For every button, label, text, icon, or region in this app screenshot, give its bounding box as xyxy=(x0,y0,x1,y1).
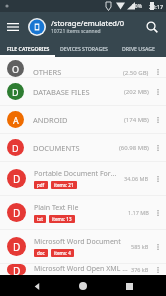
staticText: ANDROID xyxy=(33,115,124,125)
staticText: doc xyxy=(37,250,45,256)
staticText: D xyxy=(13,172,21,186)
staticText: 585 kB xyxy=(131,243,149,250)
button[interactable]: D xyxy=(0,78,166,105)
button[interactable]: D xyxy=(0,196,166,229)
staticText: pdf xyxy=(37,182,45,188)
staticText: D xyxy=(12,86,19,98)
staticText: D xyxy=(13,240,21,254)
staticText: (202 MB) xyxy=(124,88,149,96)
staticText: Microsoft Word Document xyxy=(34,237,121,247)
button[interactable]: DEVICES STORAGES xyxy=(56,41,111,55)
button[interactable]: More options xyxy=(153,265,163,275)
button[interactable]: D xyxy=(0,162,166,195)
button[interactable]: More options xyxy=(153,115,163,125)
staticText: FILE CATEGORIES xyxy=(7,45,50,52)
button[interactable]: More options xyxy=(153,67,163,77)
staticText: 10721 items scanned xyxy=(51,28,101,35)
staticText: 34.06 MB xyxy=(124,175,149,182)
button[interactable]: DRIVE USAGE xyxy=(111,41,166,55)
staticText: Microsoft Word Open XML Document xyxy=(34,264,129,274)
button[interactable]: More options xyxy=(153,143,163,153)
staticText: 376 kB xyxy=(131,266,149,273)
staticText: DEVICES STORAGES xyxy=(60,45,108,52)
staticText: DOCUMENTS xyxy=(33,143,119,153)
staticText: O xyxy=(12,63,20,75)
button[interactable]: More options xyxy=(153,208,163,218)
staticText: (2.50 GB) xyxy=(123,69,149,77)
staticText: 20:17 xyxy=(149,3,164,10)
button[interactable]: Open navigation drawer xyxy=(0,14,26,40)
button[interactable]: D xyxy=(0,134,166,161)
button[interactable]: D xyxy=(0,264,166,275)
staticText: D xyxy=(13,206,21,220)
staticText: (174 MB) xyxy=(124,116,149,124)
staticText: OTHERS xyxy=(33,67,123,77)
staticText: D xyxy=(13,264,21,275)
staticText: Plain Text File xyxy=(34,203,79,213)
button[interactable]: Search xyxy=(138,13,166,41)
staticText: txt xyxy=(37,216,43,222)
staticText: DATABASE FILES xyxy=(33,87,124,97)
button[interactable]: Storage icon xyxy=(26,16,48,38)
button[interactable]: O xyxy=(0,57,166,77)
button[interactable]: More options xyxy=(153,174,163,184)
button[interactable]: More options xyxy=(153,87,163,97)
button[interactable]: FILE CATEGORIES xyxy=(0,41,56,55)
staticText: 1.17 MB xyxy=(128,209,149,216)
button[interactable]: D xyxy=(0,230,166,263)
staticText: /storage/emulated/0 xyxy=(51,18,125,28)
staticText: Portable Document Format File xyxy=(34,169,122,179)
button[interactable]: Back xyxy=(28,277,46,295)
button[interactable]: More options xyxy=(153,242,163,252)
staticText: items: 21 xyxy=(54,182,74,188)
staticText: items: 4 xyxy=(54,250,71,256)
staticText: (60.98 MB) xyxy=(119,144,149,152)
staticText: D xyxy=(12,142,19,154)
staticText: 90% xyxy=(132,3,142,10)
button[interactable]: Recent apps xyxy=(120,277,138,295)
staticText: items: 13 xyxy=(52,216,72,222)
button[interactable]: A xyxy=(0,106,166,133)
staticText: A xyxy=(13,114,19,126)
button[interactable]: Home xyxy=(74,277,92,295)
staticText: DRIVE USAGE xyxy=(122,45,155,52)
